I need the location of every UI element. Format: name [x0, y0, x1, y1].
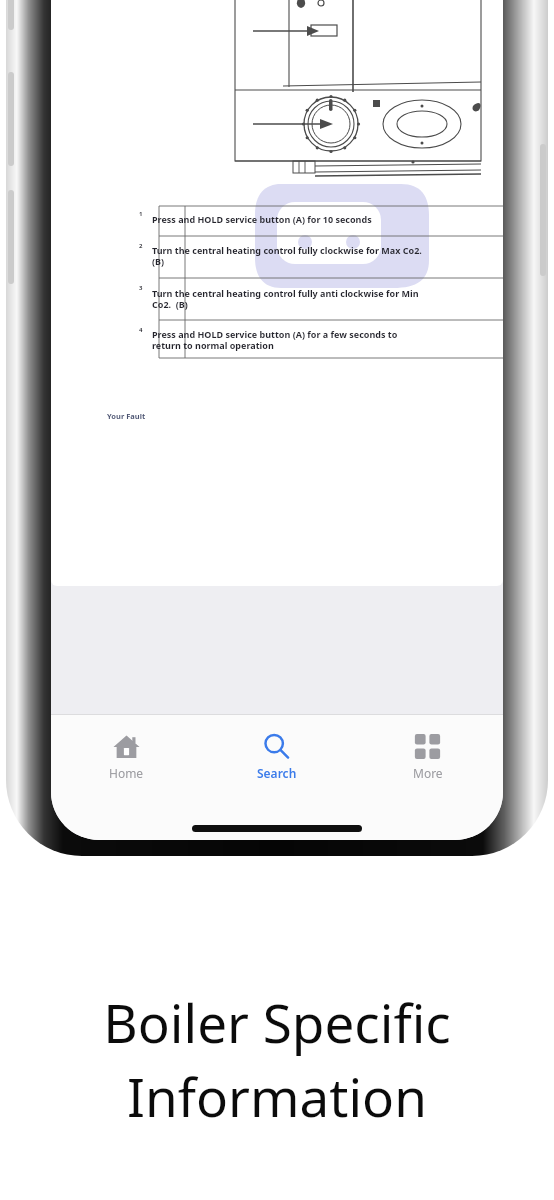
button[interactable]: Search: [201, 715, 352, 797]
staticText: 4: [139, 326, 143, 334]
staticText: Your Fault: [107, 411, 146, 421]
staticText: 2: [139, 242, 143, 250]
staticText: More: [413, 765, 443, 781]
staticText: Press and HOLD service button (A) for 10…: [152, 213, 372, 225]
staticText: Boiler Specific: [103, 986, 451, 1058]
button[interactable]: More: [352, 715, 503, 797]
staticText: Press and HOLD service button (A) for a …: [152, 328, 398, 352]
staticText: Home: [109, 765, 144, 781]
button[interactable]: Home: [51, 715, 201, 797]
staticText: 3: [139, 284, 143, 292]
staticText: Turn the central heating control fully a…: [152, 287, 419, 311]
staticText: Search: [257, 765, 297, 781]
staticText: 1: [139, 210, 143, 218]
staticText: Turn the central heating control fully c…: [152, 244, 422, 268]
staticText: Information: [127, 1060, 427, 1132]
